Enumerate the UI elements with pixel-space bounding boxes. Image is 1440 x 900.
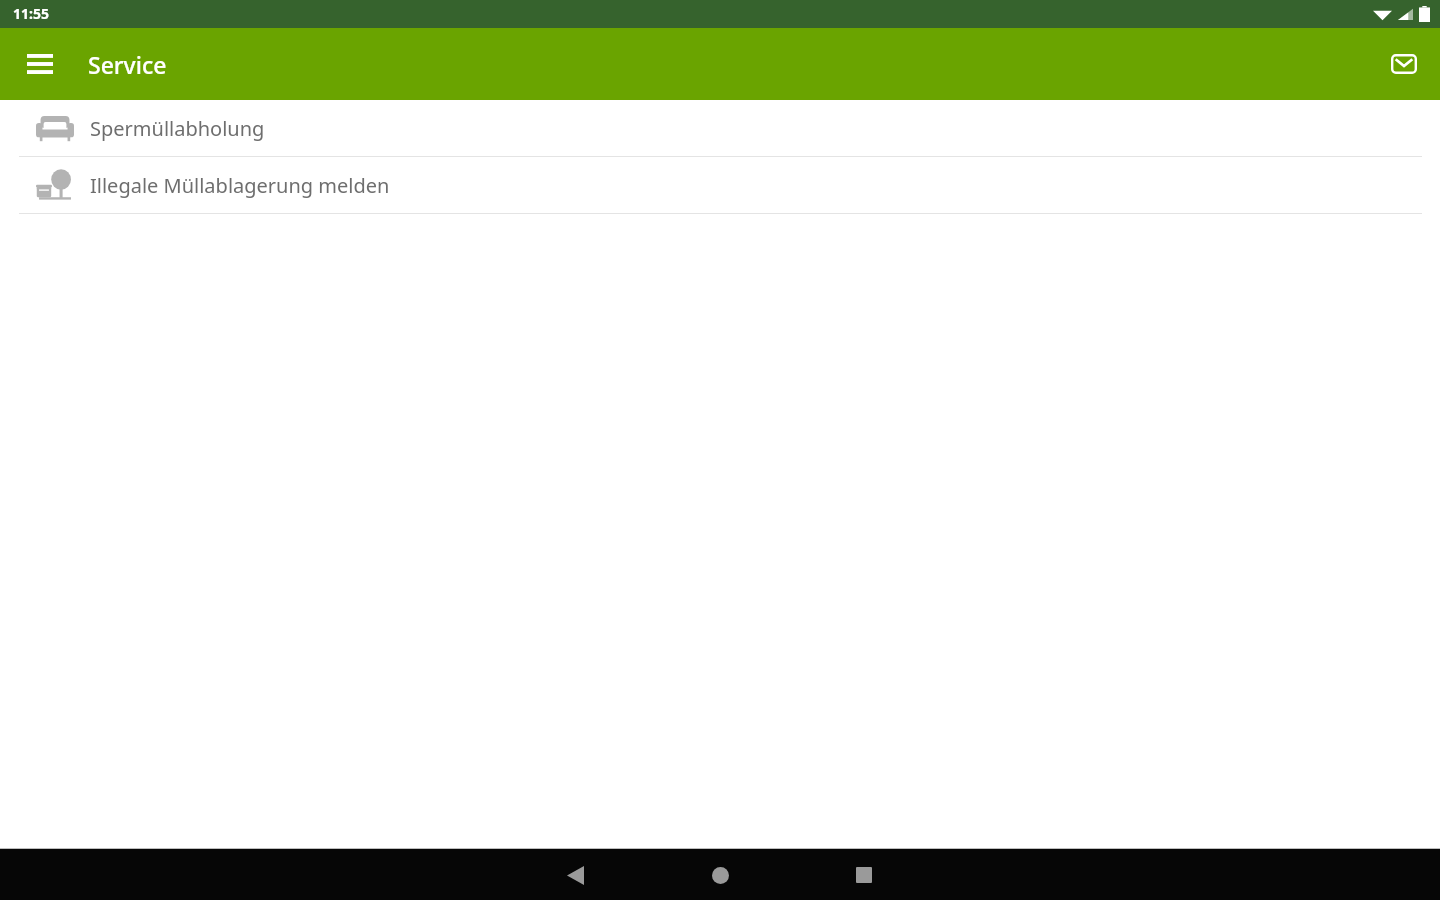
staticText: Service [88, 49, 167, 80]
button[interactable]: Recent apps [840, 851, 888, 899]
button[interactable]: Home [696, 851, 744, 899]
button[interactable]: Spermüllabholung [0, 100, 1440, 156]
button[interactable]: Open navigation menu [16, 40, 64, 88]
staticText: Spermüllabholung [90, 115, 265, 142]
staticText: Illegale Müllablagerung melden [90, 172, 390, 199]
staticText: 11:55 [13, 4, 49, 23]
button[interactable]: Contact us by mail [1380, 40, 1428, 88]
button[interactable]: Back [551, 851, 599, 899]
button[interactable]: Illegale Müllablagerung melden [0, 157, 1440, 213]
